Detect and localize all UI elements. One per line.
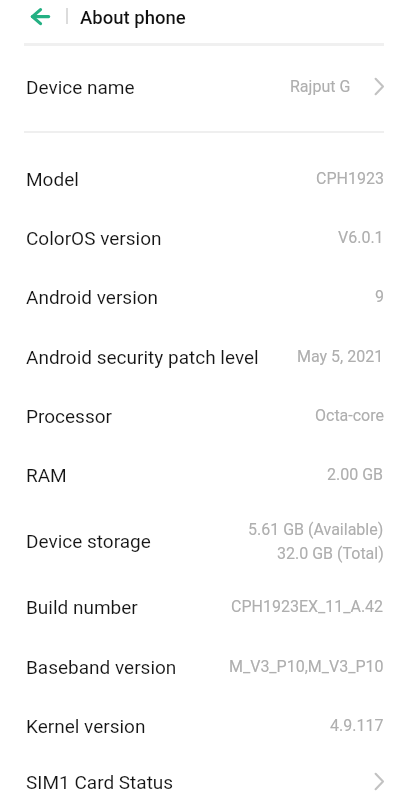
staticText: Android security patch level	[26, 346, 259, 368]
button[interactable]: Back	[22, 2, 58, 31]
staticText: M_V3_P10,M_V3_P10	[229, 657, 384, 676]
staticText: May 5, 2021	[297, 347, 384, 366]
staticText: Rajput G	[290, 77, 351, 96]
staticText: 32.0 GB (Total)	[277, 544, 384, 563]
button[interactable]: SIM1 Card Status	[0, 752, 411, 800]
staticText: 9	[375, 287, 384, 306]
button[interactable]: ColorOS version	[0, 208, 411, 267]
button[interactable]: Processor	[0, 386, 411, 445]
staticText: CPH1923	[316, 169, 384, 188]
staticText: Device name	[26, 76, 135, 98]
staticText: Octa-core	[315, 406, 384, 425]
button[interactable]: Model	[0, 149, 411, 208]
staticText: ColorOS version	[26, 227, 162, 249]
button[interactable]: Baseband version	[0, 637, 411, 696]
staticText: 4.9.117	[330, 716, 384, 735]
button[interactable]: Device name	[0, 57, 411, 116]
button[interactable]: Device storage	[0, 508, 411, 574]
staticText: 5.61 GB (Available)	[248, 520, 384, 539]
staticText: RAM	[26, 464, 67, 486]
button[interactable]: Kernel version	[0, 696, 411, 755]
staticText: Processor	[26, 405, 112, 427]
staticText: Android version	[26, 286, 159, 308]
staticText: Model	[26, 168, 79, 190]
staticText: 2.00 GB	[327, 465, 384, 484]
button[interactable]: Android security patch level	[0, 327, 411, 386]
staticText: Build number	[26, 596, 138, 618]
staticText: CPH1923EX_11_A.42	[231, 597, 384, 616]
button[interactable]: RAM	[0, 445, 411, 504]
staticText: Device storage	[26, 530, 151, 552]
staticText: Kernel version	[26, 715, 146, 737]
button[interactable]: Build number	[0, 577, 411, 636]
staticText: Baseband version	[26, 656, 177, 678]
staticText: V6.0.1	[338, 228, 384, 247]
button[interactable]: Android version	[0, 267, 411, 326]
staticText: SIM1 Card Status	[26, 771, 174, 793]
staticText: About phone	[80, 7, 186, 29]
